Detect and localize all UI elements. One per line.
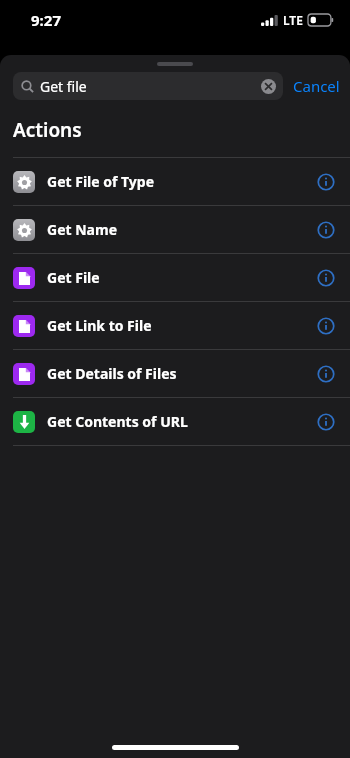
button[interactable]: Get Link to File [0, 302, 350, 350]
staticText: Get file [40, 77, 261, 96]
button[interactable]: Get Details of Files [0, 350, 350, 398]
button[interactable]: About Get File [317, 269, 335, 287]
button[interactable]: Get File [0, 254, 350, 302]
staticText: Get File of Type [47, 172, 317, 191]
button[interactable]: About Get Details of Files [317, 365, 335, 383]
staticText: Get Details of Files [47, 364, 317, 383]
staticText: LTE [283, 12, 303, 28]
staticText: Cancel [293, 76, 340, 96]
button[interactable]: About Get File of Type [317, 173, 335, 191]
button[interactable]: Clear search [261, 79, 276, 94]
staticText: Actions [13, 117, 82, 143]
button[interactable]: Cancel [293, 76, 340, 96]
button[interactable]: Get file [13, 72, 283, 100]
staticText: Get Link to File [47, 316, 317, 335]
button[interactable]: About Get Name [317, 221, 335, 239]
button[interactable]: About Get Link to File [317, 317, 335, 335]
staticText: Get Name [47, 220, 317, 239]
button[interactable]: Next [300, 54, 336, 76]
staticText: 9:27 [31, 10, 61, 30]
button[interactable]: Get File of Type [0, 158, 350, 206]
button[interactable]: Get Name [0, 206, 350, 254]
staticText: Get File [47, 268, 317, 287]
staticText: Get Contents of URL [47, 412, 317, 431]
button[interactable]: Get Contents of URL [0, 398, 350, 446]
button[interactable]: Cancel [14, 54, 64, 76]
button[interactable]: About Get Contents of URL [317, 413, 335, 431]
